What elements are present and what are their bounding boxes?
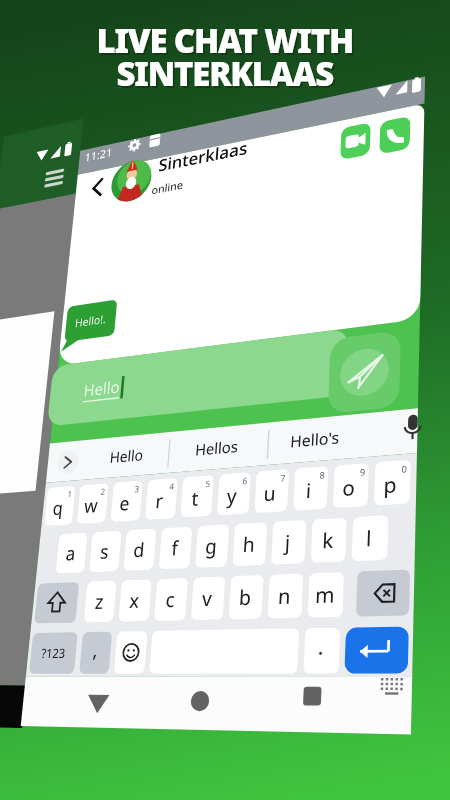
button[interactable] [178,684,222,720]
button[interactable] [90,165,126,201]
button[interactable] [332,116,374,160]
button[interactable] [262,436,354,468]
button[interactable] [318,332,400,412]
button[interactable] [150,444,245,476]
button[interactable] [55,360,345,428]
button[interactable] [52,450,66,480]
button[interactable] [402,418,434,450]
button[interactable] [374,110,414,152]
button[interactable] [75,690,119,726]
button[interactable] [350,668,388,700]
button[interactable] [276,676,320,712]
